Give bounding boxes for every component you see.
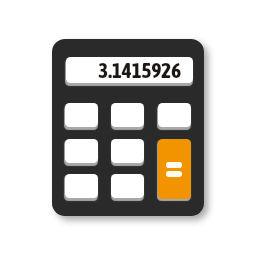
button[interactable]: 4 [65,139,98,163]
button[interactable]: 7 [65,103,98,127]
button[interactable]: 5 [111,139,144,163]
button[interactable]: 2 [111,174,144,198]
button[interactable]: 9 [158,103,191,127]
staticText: 3.1415926 [98,58,181,82]
button[interactable]: Equals [158,139,191,199]
button[interactable]: 8 [111,103,144,127]
button[interactable]: 1 [65,174,98,198]
button[interactable]: 3.1415926 [66,57,193,83]
